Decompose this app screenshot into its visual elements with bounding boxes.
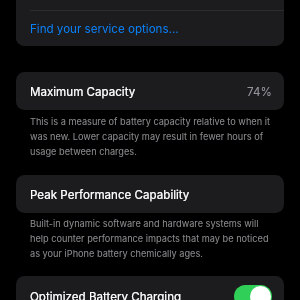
button[interactable]: Optimized Battery Charging, on [234,285,272,300]
staticText: Peak Performance Capability [30,188,190,202]
staticText: Optimized Battery Charging [30,290,182,300]
staticText: This is a measure of battery capacity re… [30,116,275,158]
staticText: Maximum Capacity [30,85,136,99]
button[interactable]: Optimized Battery Charging [16,276,284,300]
button[interactable]: Maximum Capacity [16,72,284,110]
staticText: Find your service options... [30,22,179,36]
button[interactable]: Find your service options... [16,10,284,46]
staticText: 74% [247,85,272,99]
button[interactable]: Peak Performance Capability [16,175,284,213]
staticText: Built-in dynamic software and hardware s… [30,218,275,260]
